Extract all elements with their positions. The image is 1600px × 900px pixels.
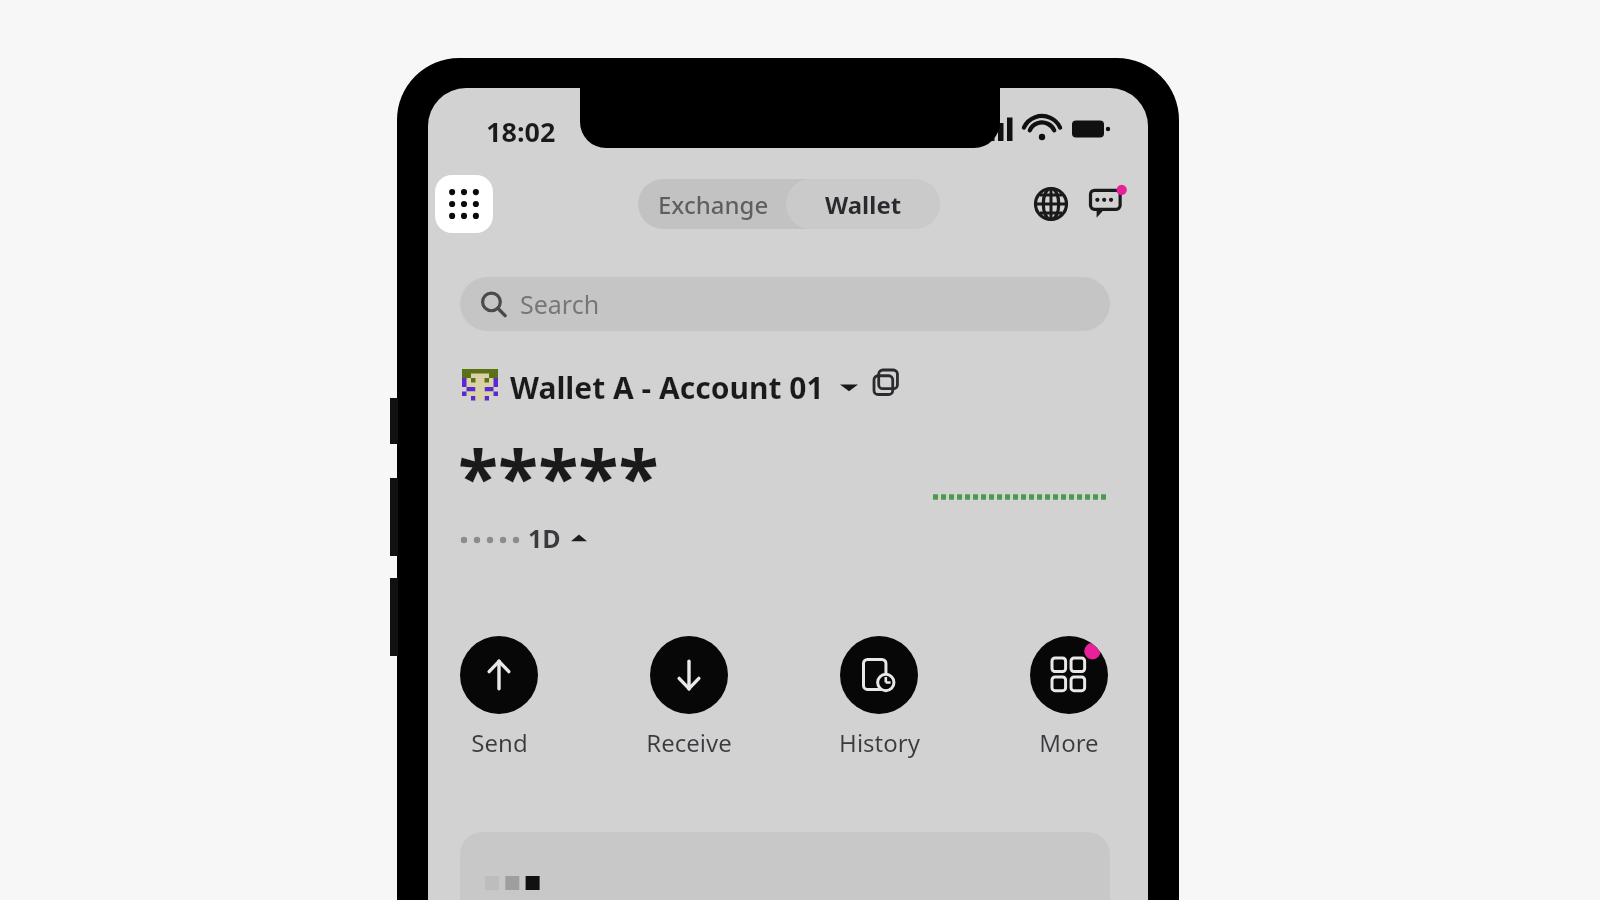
- button[interactable]: Exchange: [638, 179, 789, 229]
- staticText: Search: [520, 287, 600, 321]
- staticText: More: [1039, 726, 1099, 759]
- button[interactable]: More: [1014, 636, 1124, 759]
- button[interactable]: History: [824, 636, 934, 759]
- button[interactable]: Apps: [435, 175, 493, 233]
- button[interactable]: Copy address: [860, 356, 912, 408]
- staticText: 1D: [528, 521, 561, 555]
- staticText: Exchange: [658, 188, 769, 221]
- button[interactable]: [460, 832, 1110, 900]
- button[interactable]: 1D: [528, 520, 587, 556]
- button[interactable]: Wallet A - Account 01: [456, 358, 858, 416]
- button[interactable]: Send: [444, 636, 554, 759]
- staticText: Wallet A - Account 01: [510, 367, 824, 408]
- button[interactable]: Search: [460, 277, 1110, 331]
- button[interactable]: Language: [1023, 176, 1079, 232]
- staticText: Wallet: [825, 188, 902, 221]
- button[interactable]: Receive: [634, 636, 744, 759]
- staticText: 18:02: [486, 113, 556, 150]
- staticText: Send: [471, 726, 528, 759]
- staticText: History: [839, 726, 920, 759]
- staticText: Receive: [646, 726, 732, 759]
- button[interactable]: Wallet: [786, 179, 940, 229]
- staticText: *****: [458, 425, 659, 526]
- button[interactable]: Messages: [1080, 176, 1136, 232]
